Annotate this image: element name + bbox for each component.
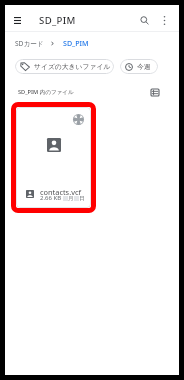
staticText: SD_PIM bbox=[39, 14, 76, 27]
staticText: 月 bbox=[68, 195, 74, 202]
button[interactable]: Navigation menu bbox=[7, 10, 27, 30]
button[interactable]: サイズの大きいファイル bbox=[15, 59, 114, 74]
staticText: SD_PIM 内のファイル bbox=[18, 88, 74, 96]
button[interactable]: Search bbox=[134, 10, 154, 30]
staticText: 日 bbox=[79, 195, 85, 202]
button[interactable]: SDカード bbox=[15, 39, 44, 48]
staticText: 2.66 KB bbox=[40, 194, 62, 202]
staticText: 今週 bbox=[137, 62, 151, 71]
button[interactable]: File options bbox=[16, 107, 91, 208]
staticText: SDカード bbox=[15, 39, 44, 48]
button[interactable]: File options bbox=[73, 114, 84, 125]
staticText: サイズの大きいファイル bbox=[34, 62, 111, 71]
button[interactable]: SD_PIM bbox=[63, 38, 89, 48]
staticText: contacts.vcf bbox=[40, 187, 81, 197]
staticText: SD_PIM bbox=[63, 38, 89, 48]
button[interactable]: 今週 bbox=[120, 59, 158, 74]
button[interactable]: Switch to list view bbox=[145, 82, 165, 102]
button[interactable]: More options bbox=[154, 10, 174, 30]
